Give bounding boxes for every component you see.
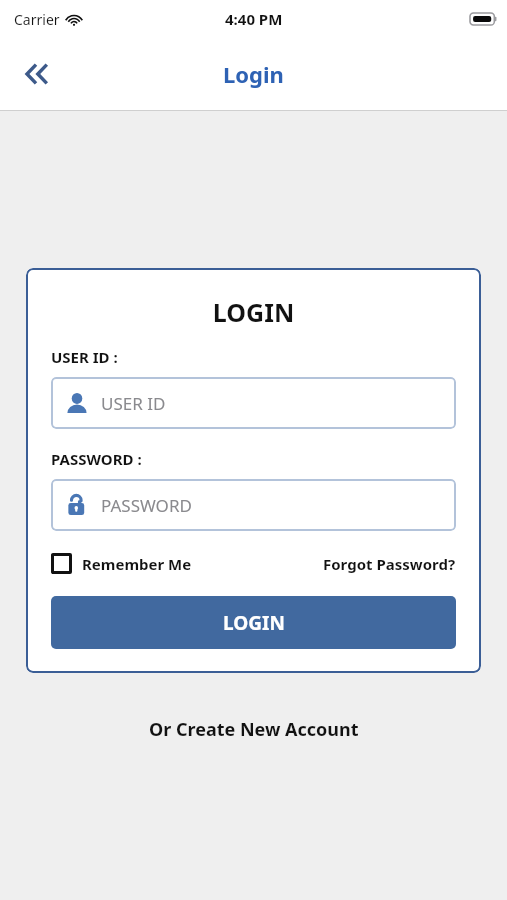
staticText: PASSWORD : [51, 449, 142, 469]
staticText: USER ID [101, 392, 166, 415]
button[interactable]: PASSWORD [51, 479, 456, 531]
button[interactable]: Or Create New Account [141, 713, 367, 746]
staticText: USER ID : [51, 347, 118, 367]
button[interactable]: Back [10, 51, 56, 97]
button[interactable]: LOGIN [51, 596, 456, 649]
staticText: LOGIN [51, 295, 456, 329]
staticText: PASSWORD [101, 494, 192, 517]
staticText: Or Create New Account [149, 717, 359, 742]
staticText: LOGIN [223, 610, 285, 636]
staticText: Login [223, 59, 284, 89]
button[interactable]: Forgot Password? [323, 554, 456, 574]
staticText: Remember Me [82, 554, 192, 574]
button[interactable]: USER ID [51, 377, 456, 429]
staticText: Carrier [14, 10, 60, 29]
button[interactable]: Remember Me [51, 553, 192, 574]
staticText: Forgot Password? [323, 554, 456, 574]
staticText: 4:40 PM [225, 9, 283, 29]
